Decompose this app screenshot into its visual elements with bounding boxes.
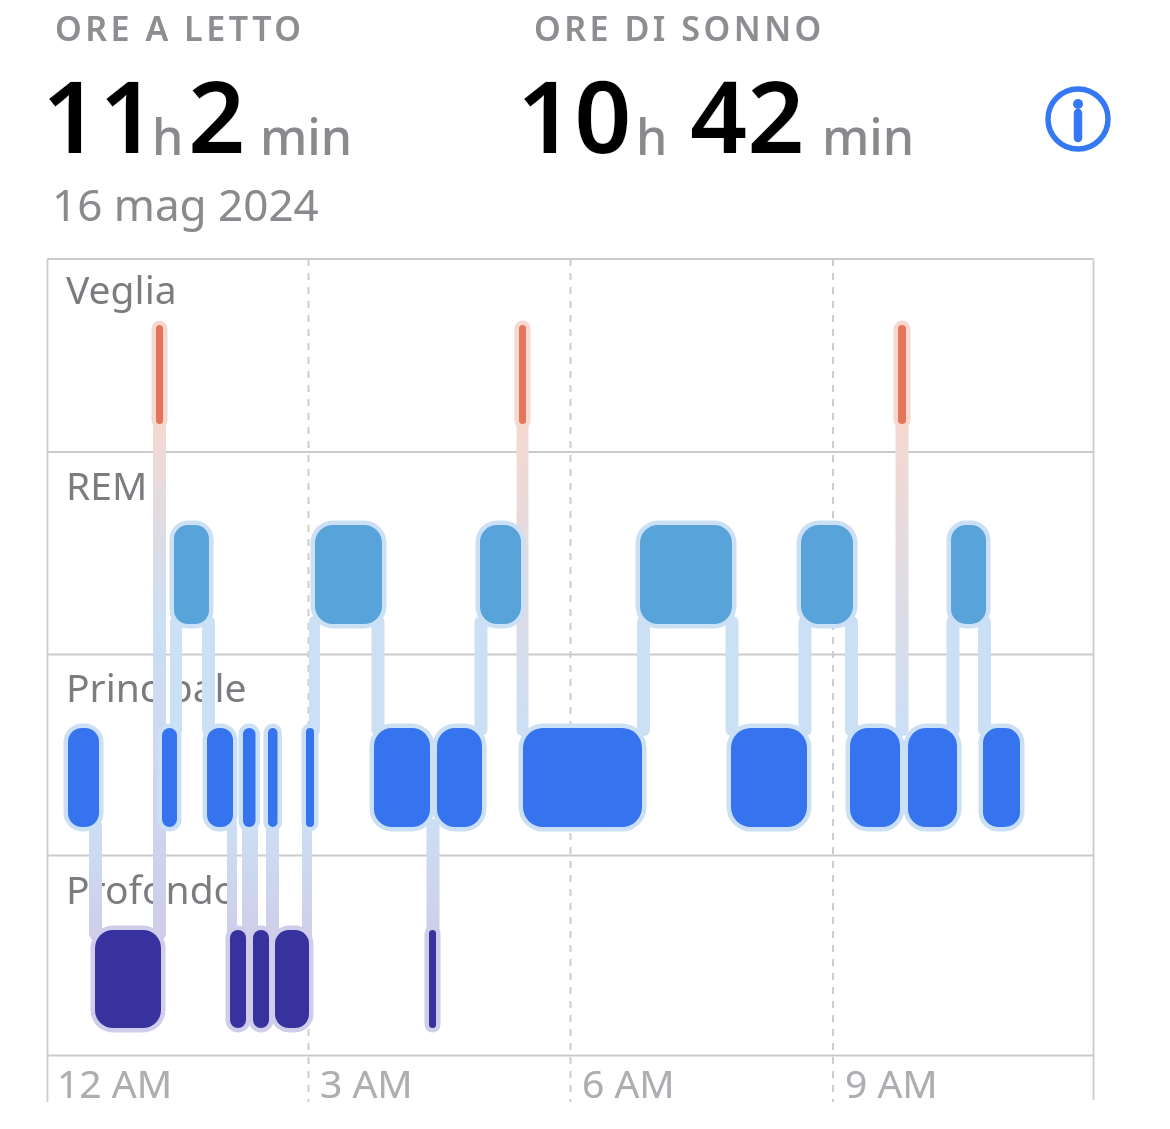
staticText: min xyxy=(822,102,915,170)
staticText: 6 AM xyxy=(582,1056,675,1109)
staticText: h xyxy=(636,102,668,170)
staticText: min xyxy=(260,102,353,170)
button[interactable] xyxy=(1042,83,1114,155)
staticText: h xyxy=(152,102,184,170)
staticText: 9 AM xyxy=(845,1056,938,1109)
staticText: 11 xyxy=(42,46,157,182)
staticText: ORE A LETTO xyxy=(55,5,305,51)
staticText: 16 mag 2024 xyxy=(52,174,319,234)
staticText: Principale xyxy=(66,660,247,713)
staticText: 12 AM xyxy=(57,1056,173,1109)
staticText: 10 xyxy=(517,46,632,182)
staticText: REM xyxy=(66,458,148,511)
staticText: Veglia xyxy=(66,262,177,315)
staticText: Profondo xyxy=(66,862,238,915)
staticText: 3 AM xyxy=(320,1056,413,1109)
staticText: 42 xyxy=(690,46,805,182)
staticText: 2 xyxy=(188,46,246,182)
staticText: ORE DI SONNO xyxy=(534,5,825,51)
